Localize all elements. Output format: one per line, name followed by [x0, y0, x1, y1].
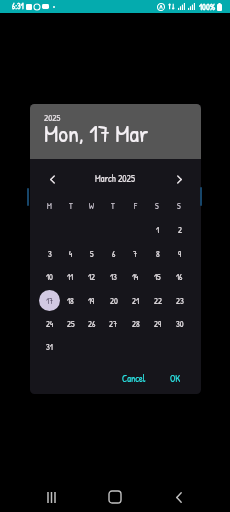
button[interactable]: 20 [103, 290, 124, 311]
button[interactable]: 3 [39, 243, 60, 264]
button[interactable]: 5 [81, 243, 102, 264]
button[interactable]: 21 [125, 290, 146, 311]
button[interactable]: 12 [81, 266, 102, 287]
staticText: 11 [67, 271, 74, 283]
staticText: 6:31 [12, 1, 24, 12]
staticText: S [155, 201, 159, 212]
button[interactable]: Recent apps [31, 477, 71, 512]
button[interactable]: Previous month [40, 167, 64, 191]
button[interactable]: 30 [169, 313, 190, 334]
button[interactable]: 31 [39, 336, 60, 357]
button[interactable]: OK [166, 369, 185, 388]
button[interactable]: 26 [81, 313, 102, 334]
staticText: 26 [88, 318, 96, 330]
button[interactable]: 14 [125, 266, 146, 287]
staticText: 9 [178, 248, 182, 260]
staticText: 2 [178, 224, 182, 236]
staticText: 31 [46, 341, 53, 353]
staticText: F [134, 201, 137, 212]
staticText: W [89, 201, 94, 212]
button[interactable]: 9 [169, 243, 190, 264]
staticText: 25 [67, 318, 75, 330]
staticText: 2025 [44, 112, 61, 124]
button[interactable]: 17 [39, 290, 60, 311]
button[interactable]: 29 [147, 313, 168, 334]
staticText: 14 [132, 271, 139, 283]
staticText: 20 [110, 295, 118, 307]
button[interactable]: 10 [39, 266, 60, 287]
staticText: T [111, 201, 115, 212]
staticText: March 2025 [95, 172, 136, 185]
button[interactable]: Home [95, 477, 135, 512]
staticText: Cancel [122, 372, 146, 385]
button[interactable]: 19 [81, 290, 102, 311]
staticText: 21 [132, 295, 140, 307]
button[interactable]: 1 [147, 219, 168, 240]
staticText: 3 [48, 248, 52, 260]
staticText: 4 [69, 248, 73, 260]
button[interactable]: 22 [147, 290, 168, 311]
button[interactable]: 8 [147, 243, 168, 264]
button[interactable]: 15 [147, 266, 168, 287]
button[interactable]: 7 [125, 243, 146, 264]
staticText: 15 [154, 271, 161, 283]
staticText: 23 [176, 295, 184, 307]
staticText: 5 [90, 248, 94, 260]
button[interactable]: 25 [60, 313, 81, 334]
staticText: 30 [176, 318, 184, 330]
staticText: 17 [46, 295, 54, 307]
staticText: 28 [132, 318, 140, 330]
staticText: 6 [112, 248, 116, 260]
staticText: 19 [88, 295, 95, 307]
button[interactable]: 24 [39, 313, 60, 334]
staticText: 29 [154, 318, 162, 330]
staticText: 1 [156, 224, 160, 236]
staticText: OK [170, 372, 181, 385]
button[interactable]: 23 [169, 290, 190, 311]
staticText: 12 [88, 271, 96, 283]
staticText: 8 [156, 248, 160, 260]
button[interactable]: 2 [169, 219, 190, 240]
button[interactable]: Back [159, 477, 199, 512]
staticText: M [47, 201, 52, 212]
button[interactable]: 28 [125, 313, 146, 334]
staticText: 7 [133, 248, 138, 260]
button[interactable]: Next month [167, 167, 191, 191]
staticText: 24 [46, 318, 54, 330]
button[interactable]: 6 [103, 243, 124, 264]
staticText: 100% [199, 1, 216, 13]
button[interactable]: 11 [60, 266, 81, 287]
button[interactable]: 27 [103, 313, 124, 334]
button[interactable]: 13 [103, 266, 124, 287]
staticText: 13 [110, 271, 117, 283]
staticText: 10 [46, 271, 53, 283]
button[interactable]: 16 [169, 266, 190, 287]
staticText: 27 [109, 318, 118, 330]
staticText: S [177, 201, 181, 212]
staticText: T [69, 201, 73, 212]
staticText: 18 [67, 295, 74, 307]
button[interactable]: Cancel [118, 369, 150, 388]
staticText: 16 [176, 271, 183, 283]
staticText: Mon, 17 Mar [44, 117, 149, 149]
button[interactable]: 18 [60, 290, 81, 311]
staticText: 22 [154, 295, 162, 307]
button[interactable]: 4 [60, 243, 81, 264]
